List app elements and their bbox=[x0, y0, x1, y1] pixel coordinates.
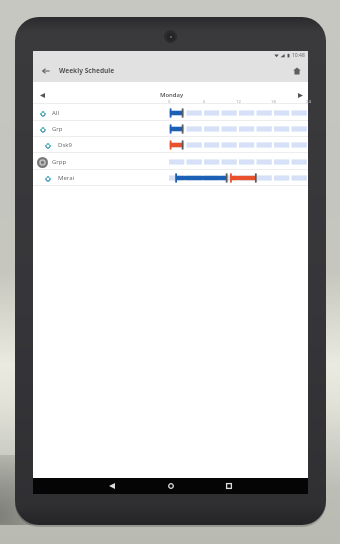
staticText: Monday bbox=[160, 91, 184, 99]
staticText: Grpp bbox=[52, 158, 67, 166]
staticText: Grp bbox=[52, 125, 63, 133]
button[interactable]: Next day bbox=[293, 88, 307, 102]
button[interactable]: Grpp bbox=[33, 154, 308, 170]
button[interactable]: Home bbox=[289, 63, 305, 79]
button[interactable]: Back bbox=[37, 62, 55, 80]
button[interactable]: Recent apps bbox=[221, 478, 236, 494]
button[interactable]: Previous day bbox=[35, 88, 49, 102]
staticText: 10:48 bbox=[292, 52, 305, 59]
staticText: All bbox=[52, 109, 59, 117]
button[interactable]: Home bbox=[163, 478, 178, 494]
staticText: 0 bbox=[168, 99, 171, 105]
button[interactable]: Merai bbox=[33, 170, 308, 186]
button[interactable]: Back bbox=[104, 478, 119, 494]
staticText: Dsk9 bbox=[58, 141, 72, 149]
staticText: Weekly Schedule bbox=[59, 66, 115, 75]
button[interactable]: All bbox=[33, 105, 308, 121]
staticText: 24 bbox=[306, 99, 311, 105]
staticText: 6 bbox=[203, 99, 206, 105]
staticText: 12 bbox=[236, 99, 241, 105]
staticText: 18 bbox=[271, 99, 276, 105]
staticText: Merai bbox=[58, 174, 75, 182]
button[interactable]: Dsk9 bbox=[33, 137, 308, 153]
button[interactable]: Grp bbox=[33, 121, 308, 137]
